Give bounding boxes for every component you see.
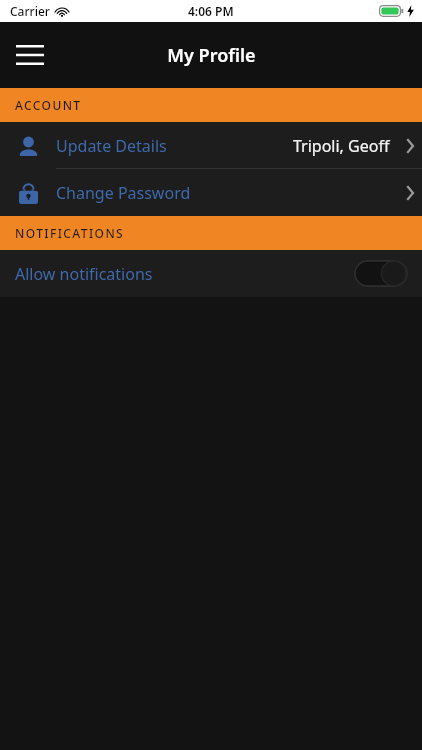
staticText: ACCOUNT xyxy=(15,97,82,113)
button[interactable]: Open navigation menu xyxy=(8,33,52,77)
staticText: Allow notifications xyxy=(15,263,153,285)
staticText: Update Details xyxy=(56,135,167,157)
staticText: 4:06 PM xyxy=(188,3,234,19)
button[interactable]: Allow notifications toggle, off xyxy=(354,260,408,287)
staticText: Tripoli, Geoff xyxy=(293,135,390,157)
staticText: NOTIFICATIONS xyxy=(15,225,125,241)
staticText: My Profile xyxy=(167,43,256,68)
button[interactable]: Change Password xyxy=(0,169,422,216)
button[interactable]: Allow notifications xyxy=(0,250,422,297)
button[interactable]: Update Details xyxy=(0,122,422,169)
staticText: Change Password xyxy=(56,182,191,204)
staticText: Carrier xyxy=(10,3,50,19)
